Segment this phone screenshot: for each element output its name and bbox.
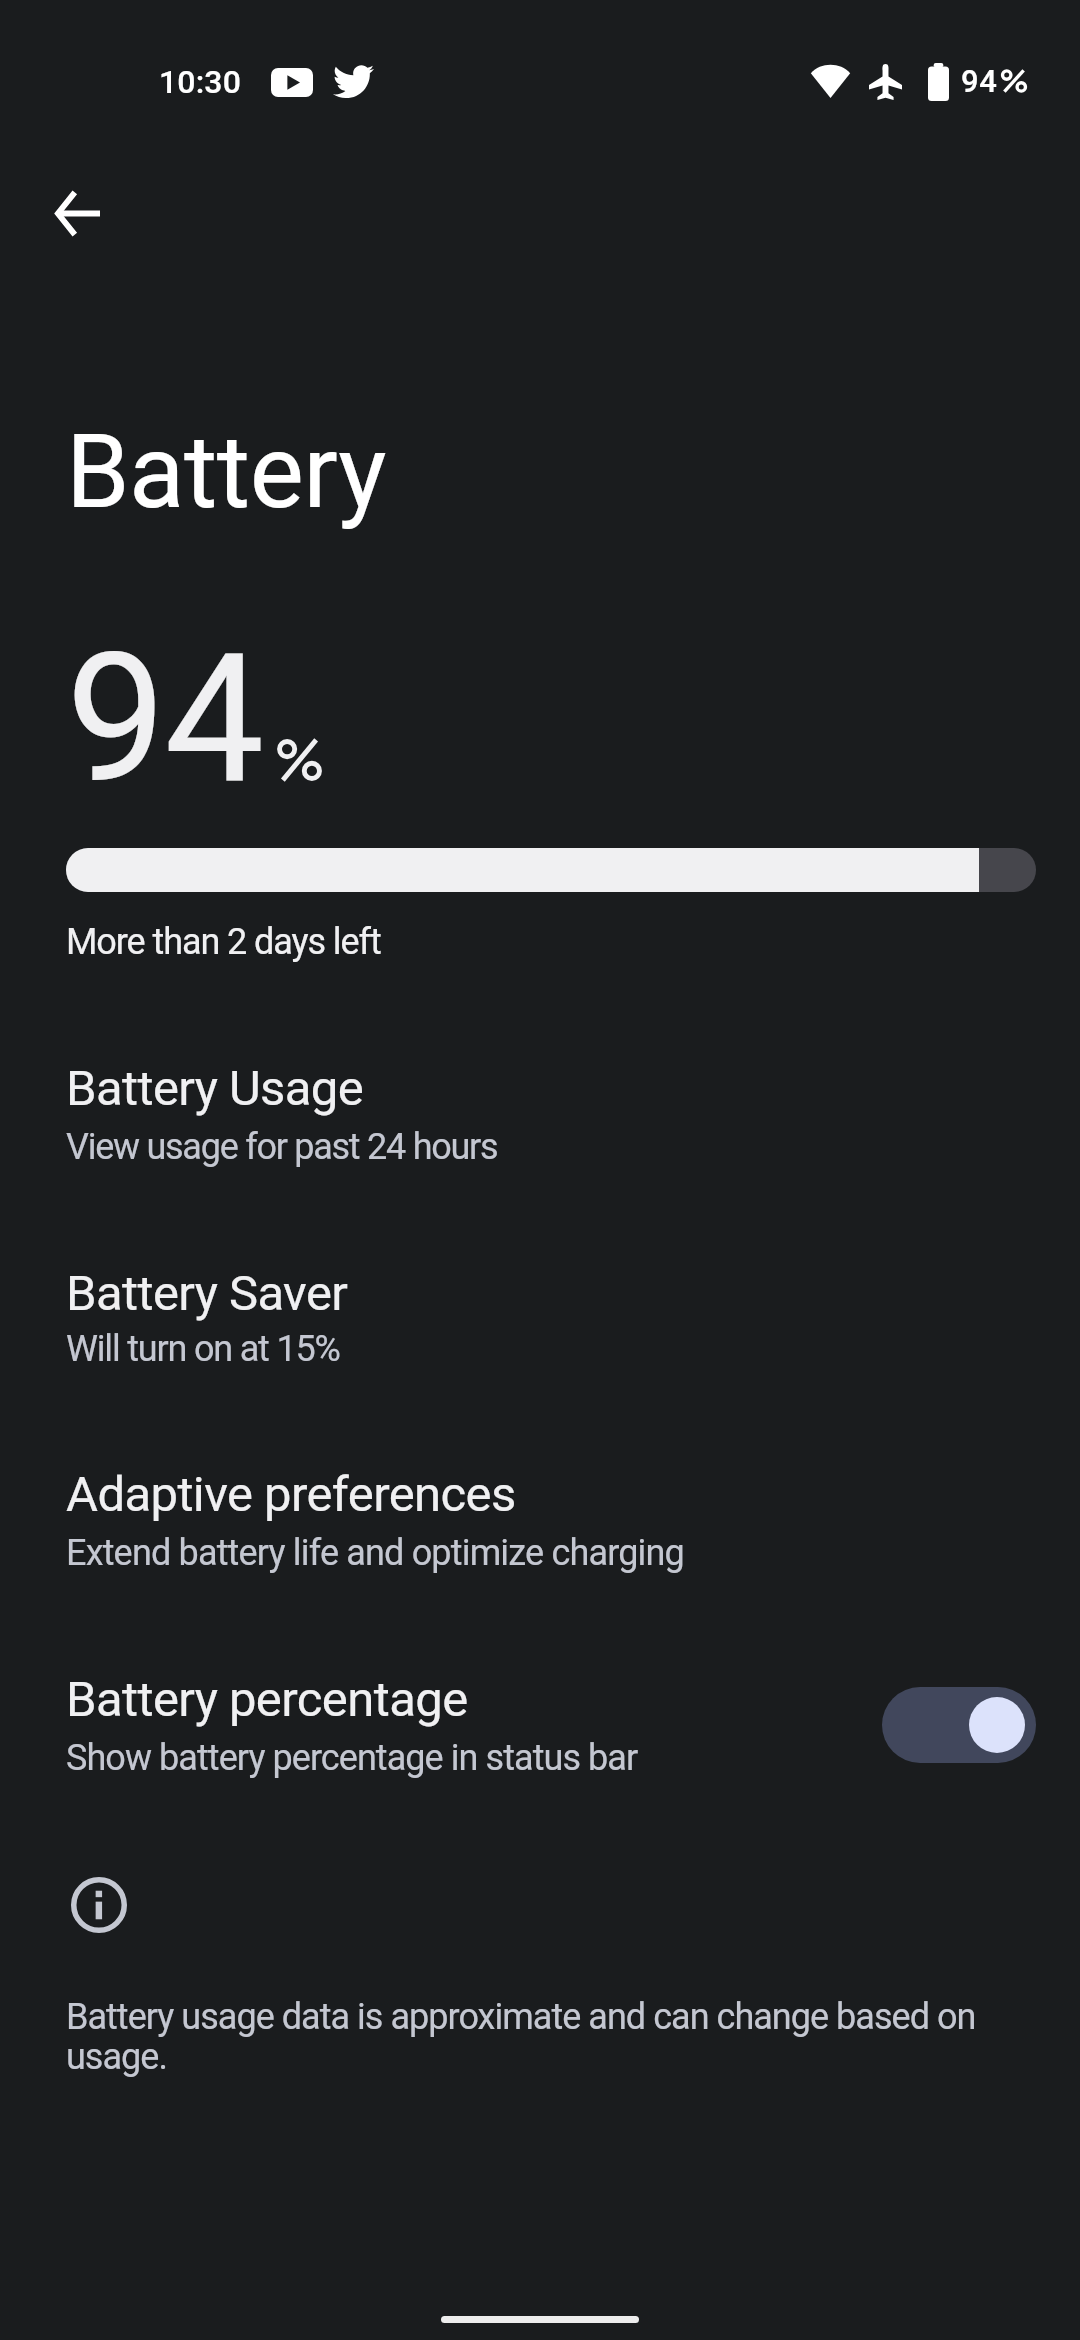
staticText: Battery percentage <box>66 1671 468 1728</box>
staticText: Show battery percentage in status bar <box>66 1737 638 1779</box>
staticText: Will turn on at 15% <box>66 1328 340 1370</box>
button[interactable]: Navigate up <box>33 169 121 257</box>
button[interactable]: Battery percentage toggle <box>882 1687 1036 1763</box>
button[interactable] <box>0 1671 1080 1793</box>
staticText: Battery <box>66 412 387 532</box>
staticText: 10:30 <box>159 63 242 101</box>
button[interactable] <box>0 1466 1080 1587</box>
staticText: Battery usage data is approximate and ca… <box>66 1996 976 2038</box>
staticText: 94 <box>66 615 263 824</box>
button[interactable] <box>0 1060 1080 1181</box>
staticText: usage. <box>66 2036 167 2078</box>
staticText: Battery Saver <box>66 1265 348 1322</box>
button[interactable] <box>0 1265 1080 1384</box>
staticText: Adaptive preferences <box>66 1466 516 1523</box>
staticText: Extend battery life and optimize chargin… <box>66 1532 684 1574</box>
staticText: More than 2 days left <box>66 921 381 963</box>
staticText: 94 <box>961 63 998 99</box>
staticText: Battery Usage <box>66 1060 364 1117</box>
staticText: View usage for past 24 hours <box>66 1126 498 1168</box>
